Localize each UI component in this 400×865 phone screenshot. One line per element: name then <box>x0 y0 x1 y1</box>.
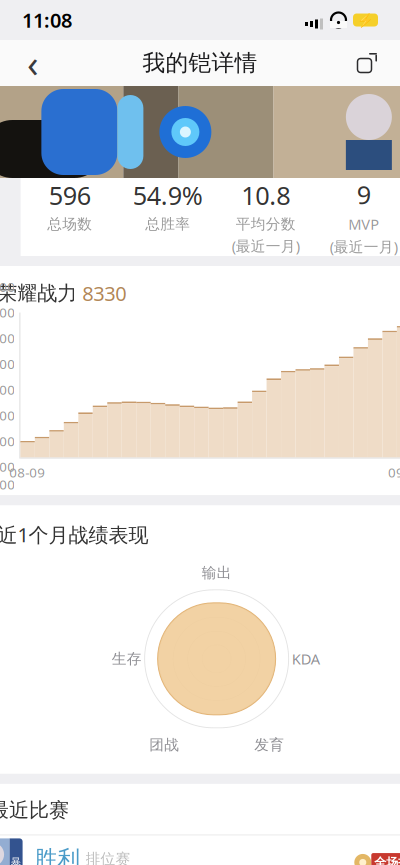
staticText: 暴 <box>11 856 22 865</box>
staticText: 总场数 <box>47 215 92 233</box>
staticText: 7200 <box>0 432 15 450</box>
staticText: 54.9% <box>133 178 203 212</box>
staticText: (最近一月) <box>232 236 300 256</box>
staticText: 平均分数 <box>236 215 296 233</box>
staticText: 8000 <box>0 329 15 347</box>
staticText: 7600 <box>0 381 15 398</box>
staticText: 8200 <box>0 304 15 321</box>
staticText: 6900 <box>0 475 15 493</box>
staticText: 生存 <box>112 650 142 668</box>
staticText: 团战 <box>149 736 179 754</box>
staticText: 胜利 <box>35 845 81 865</box>
staticText: 09-03 <box>388 464 400 481</box>
staticText: 荣耀战力 <box>0 281 77 306</box>
staticText: 全场打野 <box>374 855 400 865</box>
staticText: 8400 <box>0 278 15 296</box>
staticText: 596 <box>49 178 91 212</box>
staticText: 9 <box>357 178 371 211</box>
staticText: 10.8 <box>241 178 290 212</box>
staticText: 7800 <box>0 355 15 373</box>
staticText: 总胜率 <box>145 215 190 233</box>
staticText: 8330 <box>82 280 126 307</box>
button[interactable]: Back <box>11 41 55 85</box>
staticText: (最近一月) <box>330 237 398 256</box>
staticText: 排位赛 <box>86 850 131 865</box>
staticText: 近1个月战绩表现 <box>0 521 148 548</box>
staticText: ⚡ <box>357 12 374 28</box>
staticText: 发育 <box>254 736 284 754</box>
staticText: 7000 <box>0 458 15 475</box>
staticText: 08-09 <box>9 464 45 481</box>
staticText: 最近比赛 <box>0 798 69 822</box>
staticText: ‹ <box>27 38 39 88</box>
staticText: 11:08 <box>22 7 72 33</box>
staticText: 我的铠详情 <box>142 49 257 77</box>
staticText: 输出 <box>202 564 232 582</box>
button[interactable]: Share <box>345 41 389 85</box>
staticText: KDA <box>292 649 320 669</box>
staticText: MVP <box>348 214 379 234</box>
button[interactable]: 暴 <box>0 835 400 865</box>
staticText: 7400 <box>0 406 15 424</box>
